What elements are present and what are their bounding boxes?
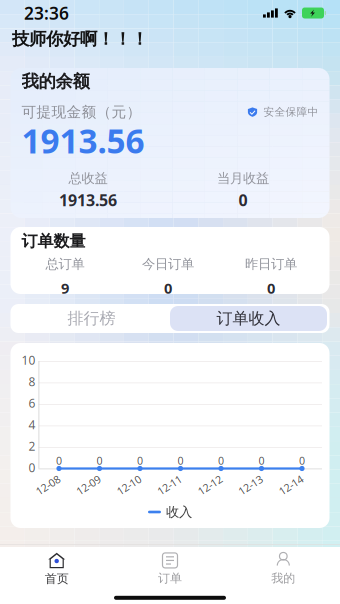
- staticText: 0: [137, 453, 143, 468]
- staticText: 可提现金额（元）: [21, 103, 141, 121]
- staticText: 0: [299, 453, 305, 468]
- staticText: 4: [28, 416, 35, 432]
- staticText: 12-13: [237, 478, 264, 492]
- staticText: 12-10: [115, 478, 142, 492]
- staticText: 0: [56, 453, 62, 468]
- staticText: 0: [28, 459, 35, 475]
- staticText: 我的余额: [21, 71, 89, 92]
- button[interactable]: 排行榜: [13, 306, 170, 331]
- staticText: 总订单: [45, 256, 84, 272]
- button[interactable]: 订单收入: [170, 306, 327, 331]
- staticText: 1913.56: [59, 189, 117, 211]
- staticText: 0: [238, 189, 247, 211]
- staticText: 0: [258, 453, 264, 468]
- staticText: 23:36: [24, 1, 69, 24]
- button[interactable]: 订单: [113, 550, 227, 588]
- staticText: 订单数量: [21, 231, 85, 251]
- staticText: 我的: [271, 571, 295, 586]
- staticText: 12-09: [75, 478, 102, 492]
- button[interactable]: 我的: [227, 550, 340, 588]
- staticText: 收入: [166, 504, 192, 520]
- staticText: 8: [28, 373, 35, 389]
- staticText: 0: [177, 453, 183, 468]
- staticText: 12-08: [34, 478, 61, 492]
- staticText: 今日订单: [142, 256, 194, 272]
- staticText: 订单: [158, 571, 182, 586]
- staticText: 0: [96, 453, 102, 468]
- staticText: 总收益: [68, 170, 107, 186]
- staticText: 12-12: [196, 478, 223, 492]
- staticText: 9: [61, 278, 69, 298]
- staticText: 昨日订单: [245, 256, 297, 272]
- staticText: 0: [164, 278, 172, 298]
- staticText: 6: [28, 395, 35, 411]
- staticText: 当月收益: [217, 170, 269, 186]
- staticText: 10: [21, 352, 35, 368]
- staticText: 0: [267, 278, 275, 298]
- button[interactable]: 首页: [0, 550, 113, 588]
- staticText: 技师你好啊！！！: [12, 28, 148, 50]
- staticText: 12-14: [277, 478, 304, 492]
- staticText: 2: [28, 438, 35, 454]
- staticText: 12-11: [156, 478, 183, 492]
- staticText: 0: [218, 453, 224, 468]
- staticText: 订单收入: [216, 309, 280, 328]
- staticText: 安全保障中: [263, 105, 318, 118]
- staticText: 1913.56: [21, 118, 144, 163]
- staticText: 排行榜: [67, 309, 115, 328]
- staticText: 首页: [45, 571, 69, 586]
